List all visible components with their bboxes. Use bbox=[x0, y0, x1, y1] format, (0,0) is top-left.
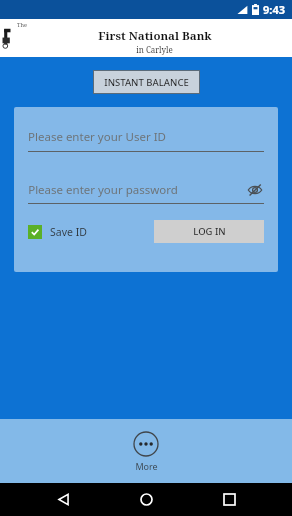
button[interactable]: Please enter your password bbox=[28, 181, 264, 204]
staticText: 9:43 bbox=[263, 2, 285, 17]
staticText: in Carlyle bbox=[136, 44, 173, 55]
button[interactable]: LOG IN bbox=[154, 220, 264, 243]
button[interactable]: INSTANT BALANCE bbox=[93, 70, 200, 94]
button[interactable]: Home bbox=[126, 483, 166, 516]
staticText: INSTANT BALANCE bbox=[104, 76, 189, 89]
button[interactable]: Please enter your User ID bbox=[28, 129, 264, 152]
staticText: First National Bank bbox=[98, 28, 212, 44]
button[interactable]: Recents bbox=[209, 483, 249, 516]
staticText: More bbox=[135, 460, 158, 472]
staticText: LOG IN bbox=[193, 225, 226, 238]
button[interactable]: Save ID bbox=[28, 225, 87, 239]
button[interactable]: Show password bbox=[246, 181, 264, 199]
staticText: Please enter your User ID bbox=[28, 129, 166, 145]
button[interactable]: More bbox=[129, 427, 163, 476]
staticText: Save ID bbox=[50, 225, 87, 239]
button[interactable]: Back bbox=[43, 483, 83, 516]
staticText: Please enter your password bbox=[28, 182, 178, 198]
staticText: The bbox=[17, 21, 27, 28]
